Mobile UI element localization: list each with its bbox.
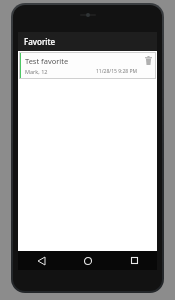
button[interactable]: Home <box>65 251 111 270</box>
staticText: 11/28/15 9:28 PM <box>96 68 137 75</box>
button[interactable]: Back <box>18 251 65 270</box>
button[interactable]: Test favorite <box>19 52 156 79</box>
staticText: Favorite <box>24 36 56 47</box>
button[interactable]: Recent apps <box>111 251 157 270</box>
button[interactable]: Delete favorite <box>140 52 156 79</box>
staticText: Mark, 12 <box>25 68 48 75</box>
staticText: Test favorite <box>25 56 69 66</box>
